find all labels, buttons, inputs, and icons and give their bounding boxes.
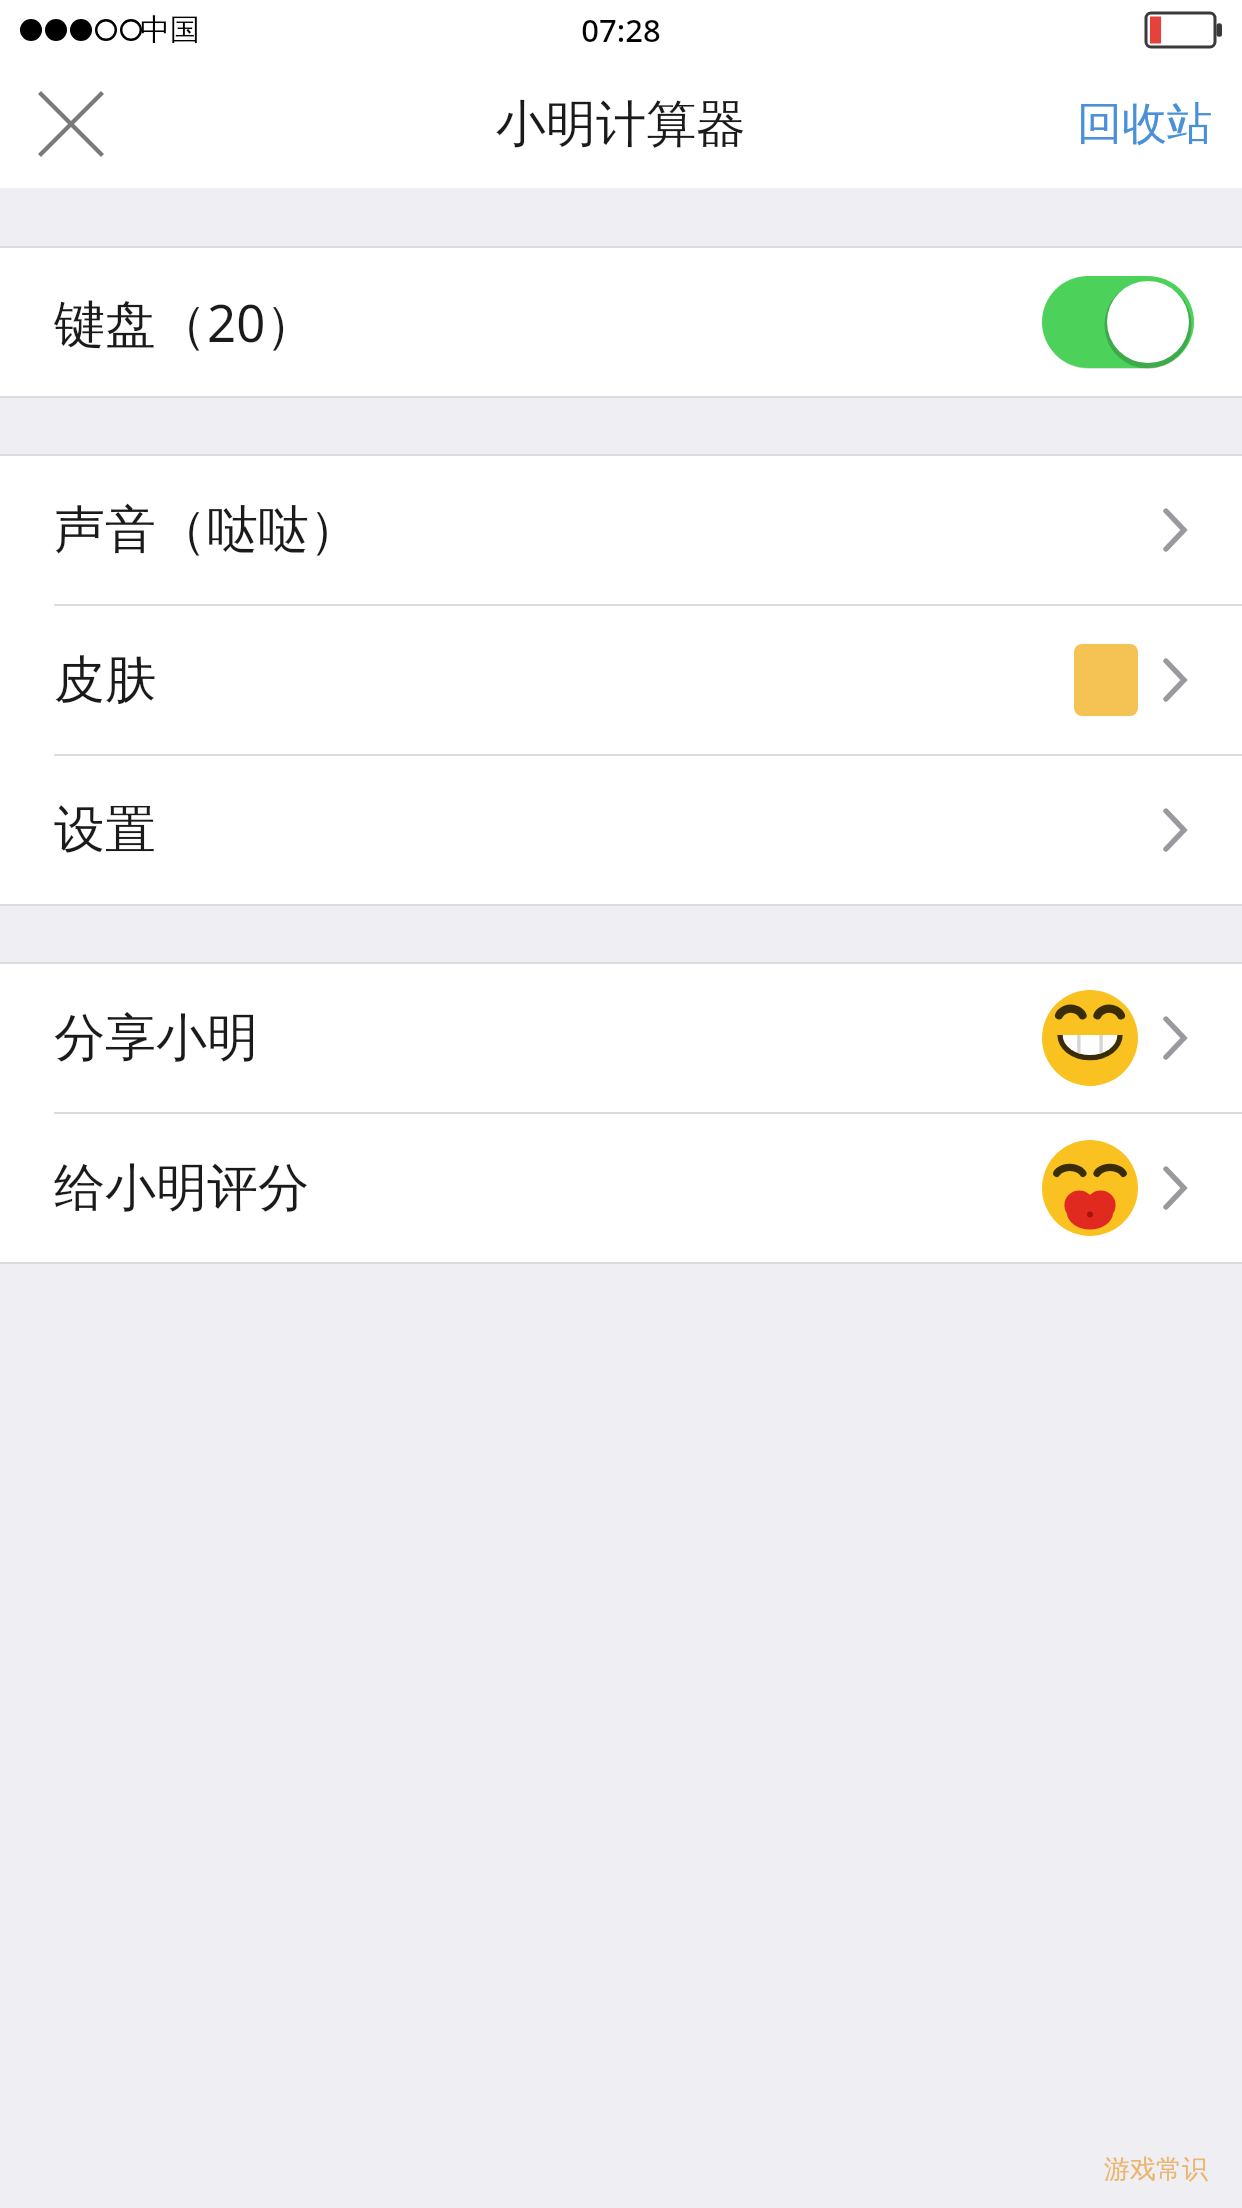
staticText: 分享小明	[54, 1006, 258, 1070]
staticText: 小明计算器	[496, 93, 746, 156]
button[interactable]: 皮肤	[0, 606, 1242, 754]
staticText: 皮肤	[54, 648, 156, 712]
staticText: 键盘（20）	[54, 287, 317, 357]
staticText: 07:28	[581, 9, 661, 51]
staticText: 回收站	[1077, 96, 1212, 153]
staticText: 声音（哒哒）	[54, 498, 360, 562]
button[interactable]: 给小明评分	[0, 1114, 1242, 1262]
staticText: 设置	[54, 798, 156, 862]
staticText: 中国	[140, 11, 200, 49]
button[interactable]: 设置	[0, 756, 1242, 904]
button[interactable]: 键盘（20）	[0, 248, 1242, 396]
button[interactable]: Keyboard toggle	[1042, 276, 1194, 368]
staticText: 游戏常识	[1104, 2153, 1208, 2186]
staticText: 给小明评分	[54, 1156, 309, 1220]
button[interactable]: 分享小明	[0, 964, 1242, 1112]
button[interactable]: 回收站	[1047, 74, 1242, 175]
button[interactable]: 声音（哒哒）	[0, 456, 1242, 604]
button[interactable]: Close	[28, 81, 114, 167]
